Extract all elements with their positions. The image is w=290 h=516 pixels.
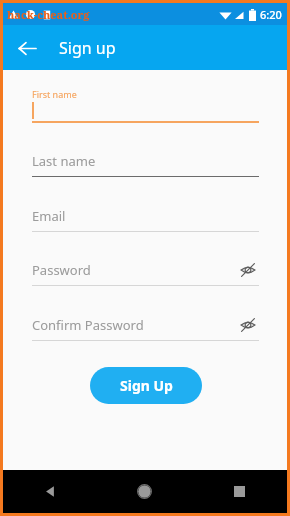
button[interactable]: Password bbox=[32, 259, 259, 286]
staticText: hack-cheat.org bbox=[7, 7, 90, 22]
button[interactable]: Last name bbox=[32, 150, 259, 177]
staticText: Sign Up bbox=[120, 376, 173, 395]
button[interactable]: Back bbox=[9, 30, 45, 66]
staticText: Confirm Password bbox=[32, 316, 144, 334]
button[interactable]: Toggle password visibility bbox=[237, 314, 259, 336]
staticText: Last name bbox=[32, 152, 96, 170]
button[interactable]: Email bbox=[32, 205, 259, 232]
staticText: Email bbox=[32, 207, 66, 225]
button[interactable]: Recent apps bbox=[192, 470, 287, 513]
button[interactable]: Home bbox=[97, 470, 192, 513]
button[interactable]: Sign Up bbox=[90, 367, 202, 404]
button[interactable]: First name bbox=[32, 88, 259, 123]
staticText: First name bbox=[32, 88, 77, 100]
button[interactable]: Back bbox=[3, 470, 97, 513]
staticText: 6:20 bbox=[260, 7, 282, 22]
button[interactable]: Toggle password visibility bbox=[237, 259, 259, 281]
button[interactable]: Confirm Password bbox=[32, 314, 259, 341]
staticText: Password bbox=[32, 261, 91, 279]
staticText: Sign up bbox=[59, 37, 116, 59]
